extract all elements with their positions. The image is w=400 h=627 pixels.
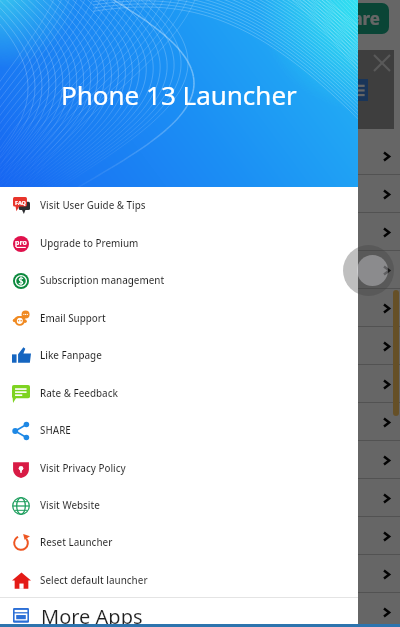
button[interactable]: Open: [0, 175, 400, 213]
button[interactable]: Open: [0, 365, 400, 403]
button[interactable]: Reset Launcher: [0, 524, 358, 561]
other: Open: [382, 190, 391, 199]
button[interactable]: Open: [0, 403, 400, 441]
button[interactable]: Open: [0, 517, 400, 555]
button[interactable]: Open: [0, 593, 400, 627]
button[interactable]: Share: [300, 3, 389, 34]
button[interactable]: FAQ: [0, 187, 358, 224]
button[interactable]: Rate & Feedback: [0, 375, 358, 412]
other: Close: [374, 55, 390, 71]
other: Open: [382, 532, 391, 541]
other: Open: [382, 608, 391, 617]
button[interactable]: Open: [0, 213, 400, 251]
staticText: Visit User Guide & Tips: [40, 199, 146, 212]
staticText: SHARE: [40, 424, 71, 437]
button[interactable]: Open: [0, 327, 400, 365]
other: Open: [382, 228, 391, 237]
button[interactable]: Open: [0, 251, 400, 289]
staticText: Email Support: [40, 312, 106, 325]
button[interactable]: Like Fanpage: [0, 337, 358, 374]
button[interactable]: Open: [0, 289, 400, 327]
button[interactable]: Email Support: [0, 300, 358, 337]
other: Open: [382, 456, 391, 465]
staticText: pro: [15, 238, 27, 248]
button[interactable]: Subscription management: [0, 262, 358, 299]
staticText: Visit Website: [40, 499, 100, 512]
other: Open: [382, 418, 391, 427]
button[interactable]: Open: [0, 441, 400, 479]
staticText: FAQ: [15, 199, 26, 206]
other: Open: [382, 152, 391, 161]
staticText: Rate & Feedback: [40, 387, 118, 400]
button[interactable]: pro: [0, 225, 358, 262]
button[interactable]: Visit Privacy Policy: [0, 450, 358, 487]
staticText: Phone 13 Launcher: [61, 77, 297, 112]
staticText: Like Fanpage: [40, 349, 102, 362]
other: Open: [382, 494, 391, 503]
staticText: Share: [332, 7, 381, 30]
staticText: Visit Privacy Policy: [40, 462, 126, 475]
button[interactable]: Open: [0, 479, 400, 517]
other: Open: [382, 304, 391, 313]
staticText: Upgrade to Premium: [40, 237, 139, 250]
button[interactable]: More Apps: [0, 600, 358, 627]
staticText: More Apps: [41, 603, 143, 627]
button[interactable]: Select default launcher: [0, 562, 358, 599]
staticText: Reset Launcher: [40, 536, 113, 549]
button[interactable]: SHARE: [0, 412, 358, 449]
button[interactable]: Open: [0, 137, 400, 175]
button[interactable]: Open: [0, 555, 400, 593]
button[interactable]: Visit Website: [0, 487, 358, 524]
other: Open: [382, 266, 391, 275]
staticText: Subscription management: [40, 274, 165, 287]
other: Open: [382, 380, 391, 389]
other: Open: [382, 342, 391, 351]
other: Open: [382, 570, 391, 579]
staticText: Select default launcher: [40, 574, 148, 587]
